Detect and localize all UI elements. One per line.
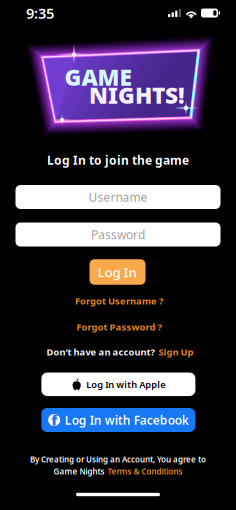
staticText: GAME bbox=[64, 62, 131, 92]
button[interactable]: Username bbox=[15, 185, 220, 209]
staticText: Sign Up bbox=[158, 346, 193, 358]
button[interactable]: Password bbox=[15, 222, 220, 246]
staticText: Log In to join the game bbox=[47, 152, 189, 168]
staticText: NIGHTS! bbox=[89, 80, 185, 110]
button[interactable]: Forgot Username ? bbox=[64, 294, 174, 308]
button[interactable]: Forgot Password ? bbox=[64, 320, 174, 334]
staticText: By Creating or Using an Account, You agr… bbox=[30, 454, 206, 465]
staticText: Log In with Apple bbox=[86, 378, 165, 390]
staticText: Forgot Password ? bbox=[76, 321, 161, 333]
staticText: Log In with Facebook bbox=[65, 412, 189, 428]
button[interactable]: Log In bbox=[89, 259, 145, 285]
staticText: Username bbox=[88, 189, 147, 205]
staticText: Password bbox=[91, 226, 145, 242]
button[interactable]: f bbox=[41, 408, 195, 432]
staticText: Game Nights bbox=[53, 466, 104, 477]
staticText: f bbox=[51, 410, 57, 429]
staticText: Log In bbox=[97, 263, 137, 281]
staticText: Forgot Username ? bbox=[75, 295, 163, 307]
staticText: Terms & Conditions bbox=[107, 466, 182, 477]
button[interactable]: Sign Up bbox=[158, 346, 193, 358]
button[interactable]: Log In with Apple bbox=[41, 373, 195, 396]
staticText: Don't have an account? bbox=[46, 346, 154, 358]
staticText: 9:35 bbox=[26, 3, 54, 23]
button[interactable]: Terms & Conditions bbox=[107, 466, 182, 477]
